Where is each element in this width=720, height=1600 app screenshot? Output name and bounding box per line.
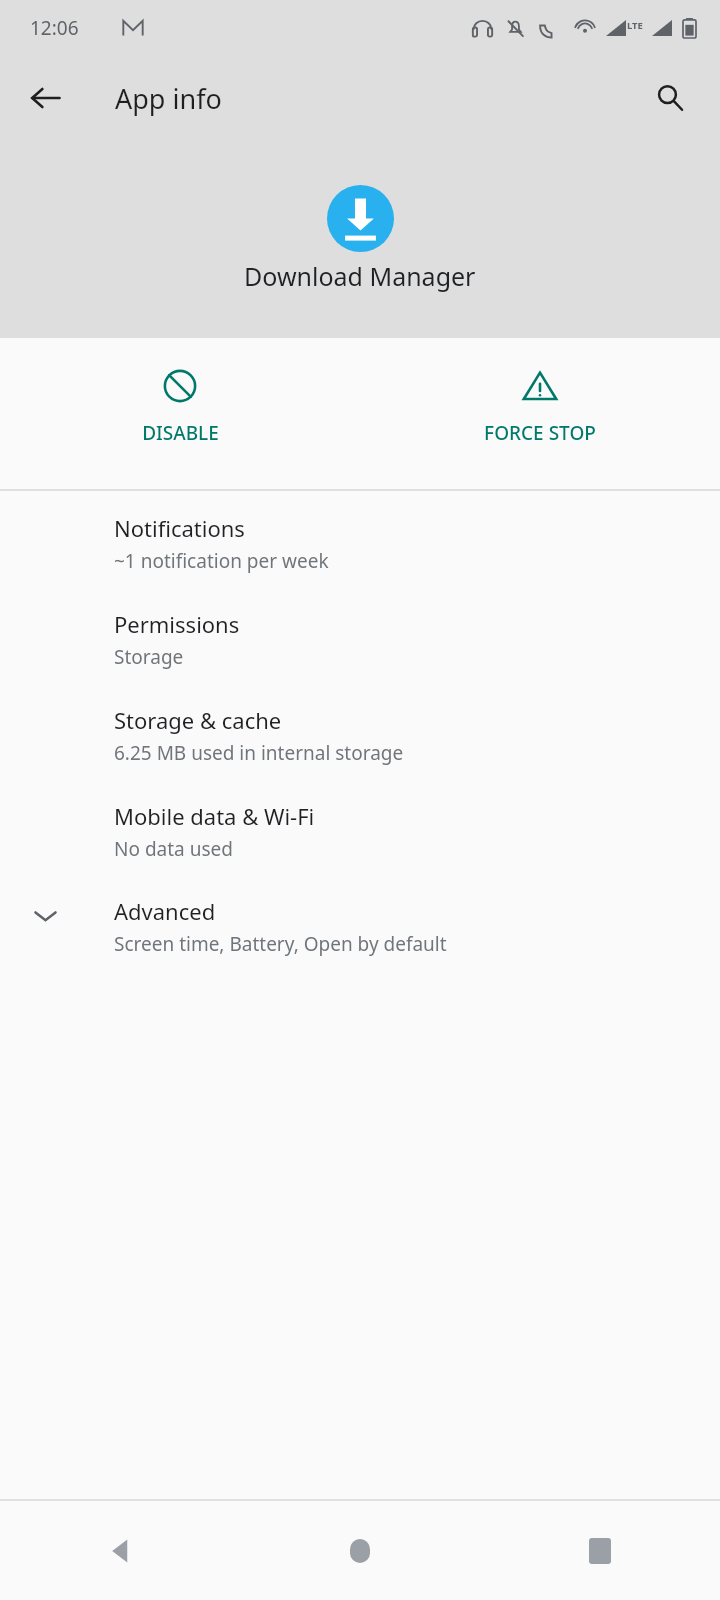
staticText: Notifications [114,513,245,543]
button[interactable]: FORCE STOP [360,338,720,446]
staticText: App info [115,80,222,117]
staticText: Download Manager [244,259,476,293]
button[interactable]: Storage & cache [0,680,720,776]
staticText: Storage [114,644,184,670]
button[interactable]: Back [14,66,78,130]
staticText: Mobile data & Wi-Fi [114,801,315,831]
button[interactable]: DISABLE [0,338,360,446]
staticText: Permissions [114,609,240,639]
staticText: 6.25 MB used in internal storage [114,740,404,766]
staticText: No data used [114,836,233,862]
staticText: LTE [627,19,643,32]
staticText: Screen time, Battery, Open by default [114,931,447,957]
button[interactable]: Notifications [0,491,720,584]
button[interactable]: Recents [480,1501,720,1600]
button[interactable]: Advanced [0,872,720,967]
staticText: DISABLE [142,420,219,446]
button[interactable]: Permissions [0,584,720,680]
staticText: ~1 notification per week [114,548,329,574]
staticText: Advanced [114,896,216,926]
button[interactable]: Home [240,1501,480,1600]
button[interactable]: Mobile data & Wi-Fi [0,776,720,872]
staticText: FORCE STOP [484,420,596,446]
staticText: 12:06 [30,15,79,41]
staticText: Storage & cache [114,705,282,735]
button[interactable]: Search [640,68,700,128]
button[interactable]: Back [0,1501,240,1600]
